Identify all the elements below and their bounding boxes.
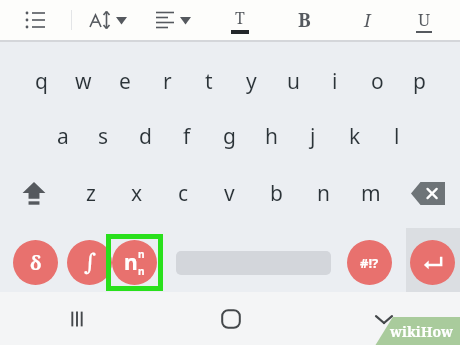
staticText: k: [349, 122, 361, 151]
staticText: i: [332, 67, 338, 96]
button[interactable]: Superscript subscript: [112, 240, 157, 285]
staticText: T: [235, 7, 245, 29]
staticText: p: [413, 67, 426, 96]
button[interactable]: Delta key: [13, 240, 58, 285]
button[interactable]: Home: [154, 292, 307, 345]
button[interactable]: Backspace: [396, 176, 460, 210]
staticText: ∫: [84, 249, 96, 276]
staticText: v: [224, 179, 235, 208]
staticText: o: [371, 67, 384, 96]
button[interactable]: d: [124, 119, 166, 153]
button[interactable]: y: [230, 64, 272, 98]
staticText: y: [246, 67, 257, 96]
button[interactable]: f: [166, 119, 208, 153]
staticText: u: [287, 67, 300, 96]
button[interactable]: o: [356, 64, 398, 98]
staticText: h: [265, 122, 278, 151]
staticText: r: [163, 67, 172, 96]
button[interactable]: x: [114, 176, 160, 210]
button[interactable]: Shift: [0, 176, 68, 210]
button[interactable]: z: [68, 176, 114, 210]
button[interactable]: l: [376, 119, 418, 153]
button[interactable]: b: [253, 176, 300, 210]
staticText: s: [98, 122, 109, 151]
staticText: wiki: [390, 322, 421, 341]
button[interactable]: k: [334, 119, 376, 153]
staticText: B: [298, 7, 311, 33]
button[interactable]: Italic: [346, 0, 388, 40]
button[interactable]: Underline: [403, 0, 445, 40]
button[interactable]: q: [20, 64, 62, 98]
staticText: w: [75, 67, 92, 96]
button[interactable]: Hide keyboard: [307, 292, 460, 345]
button[interactable]: e: [104, 64, 146, 98]
button[interactable]: Bold: [283, 0, 325, 40]
button[interactable]: s: [83, 119, 124, 153]
button[interactable]: i: [314, 64, 356, 98]
button[interactable]: Symbols: [347, 240, 392, 285]
button[interactable]: g: [208, 119, 250, 153]
staticText: #!?: [360, 254, 379, 272]
staticText: b: [270, 179, 283, 208]
staticText: q: [35, 67, 48, 96]
button[interactable]: Font size: [88, 0, 140, 40]
staticText: δ: [30, 250, 42, 276]
button[interactable]: w: [62, 64, 104, 98]
staticText: n: [138, 247, 145, 261]
staticText: How: [421, 322, 454, 341]
staticText: a: [57, 122, 69, 151]
button[interactable]: Enter: [410, 240, 455, 285]
staticText: f: [183, 122, 191, 151]
button[interactable]: p: [398, 64, 440, 98]
button[interactable]: a: [42, 119, 83, 153]
staticText: l: [394, 122, 400, 151]
staticText: U: [418, 8, 431, 31]
button[interactable]: Bullet list: [22, 0, 56, 40]
staticText: c: [178, 179, 189, 208]
button[interactable]: Text colour: [220, 0, 260, 40]
staticText: n: [317, 179, 330, 208]
staticText: g: [223, 122, 236, 151]
staticText: I: [364, 8, 371, 33]
button[interactable]: h: [250, 119, 292, 153]
button[interactable]: Integral key: [67, 240, 112, 285]
staticText: e: [119, 67, 131, 96]
button[interactable]: t: [188, 64, 230, 98]
button[interactable]: u: [272, 64, 314, 98]
staticText: z: [86, 179, 96, 208]
button[interactable]: m: [347, 176, 394, 210]
button[interactable]: j: [292, 119, 334, 153]
button[interactable]: Alignment: [154, 0, 204, 40]
button[interactable]: c: [160, 176, 206, 210]
button[interactable]: r: [146, 64, 188, 98]
staticText: x: [131, 179, 143, 208]
staticText: m: [361, 179, 381, 208]
button[interactable]: n: [300, 176, 347, 210]
staticText: n: [124, 248, 138, 277]
button[interactable]: v: [206, 176, 253, 210]
button[interactable]: Recent apps: [0, 292, 154, 345]
staticText: j: [310, 122, 316, 151]
staticText: t: [205, 67, 213, 96]
staticText: d: [139, 122, 152, 151]
staticText: n: [138, 264, 145, 278]
